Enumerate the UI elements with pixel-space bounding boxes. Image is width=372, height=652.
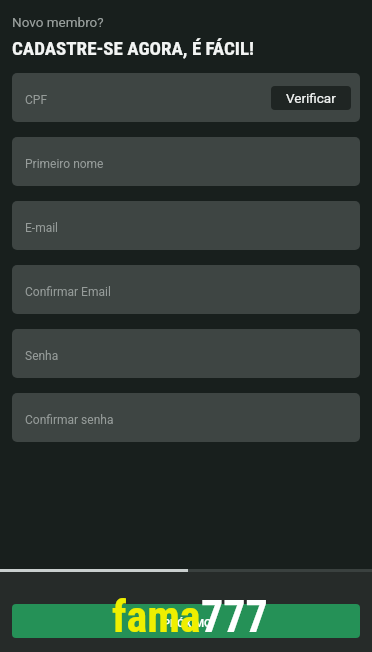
staticText: PRÓXIMO [163,617,212,630]
staticText: CADASTRE-SE AGORA, É FÁCIL! [12,37,255,59]
staticText: Novo membro? [12,14,104,30]
staticText: 777 [201,591,268,643]
button[interactable]: PRÓXIMO [12,604,360,638]
staticText: Primeiro nome [25,157,104,171]
staticText: Confirmar Email [25,285,111,299]
staticText: fama [112,591,201,643]
button[interactable]: Confirmar senha [12,393,360,442]
button[interactable]: Primeiro nome [12,137,360,186]
button[interactable]: Verificar [271,86,351,110]
button[interactable]: Senha [12,329,360,378]
staticText: E-mail [25,221,59,235]
button[interactable]: CPF [12,73,360,122]
staticText: Confirmar senha [25,413,114,427]
button[interactable]: Confirmar Email [12,265,360,314]
button[interactable]: E-mail [12,201,360,250]
staticText: Verificar [286,90,336,106]
staticText: Senha [25,349,59,363]
staticText: CPF [25,93,48,107]
